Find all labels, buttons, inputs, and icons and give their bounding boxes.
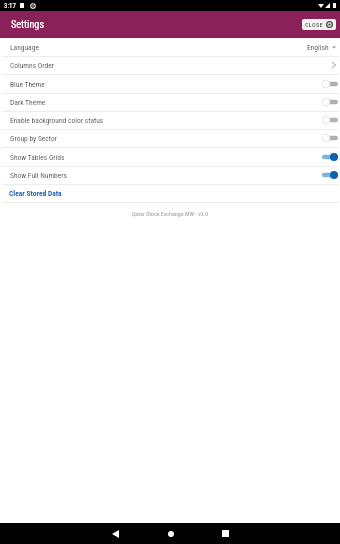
staticText: Clear Stored Data	[9, 189, 62, 198]
button[interactable]: Recents	[198, 523, 253, 544]
staticText: Group by Sector	[10, 134, 58, 143]
staticText: Settings	[11, 19, 45, 31]
staticText: Show Tables Grids	[10, 153, 65, 162]
button[interactable]: Group by Sector	[0, 129, 340, 147]
button[interactable]: Enable background color status	[0, 111, 340, 129]
staticText: Show Full Numbers	[10, 171, 68, 180]
button[interactable]: Clear Stored Data	[0, 184, 340, 202]
button[interactable]: Columns Order	[0, 56, 340, 74]
button[interactable]: Toggle off	[322, 132, 338, 144]
staticText: English	[307, 43, 329, 52]
button[interactable]: Back	[88, 523, 143, 544]
button[interactable]: Show Full Numbers	[0, 166, 340, 184]
button[interactable]: Toggle on	[322, 169, 338, 181]
staticText: Qatar Stock Exchange MW - v2.0	[0, 210, 340, 217]
button[interactable]: Dark Theme	[0, 93, 340, 111]
button[interactable]: Close settings	[302, 19, 336, 30]
button[interactable]: Toggle off	[322, 78, 338, 90]
button[interactable]: Toggle off	[322, 96, 338, 108]
staticText: Enable background color status	[10, 116, 104, 125]
button[interactable]: Toggle off	[322, 114, 338, 126]
staticText: Blue Theme	[10, 80, 45, 89]
button[interactable]: Toggle on	[322, 151, 338, 163]
button[interactable]: Show Tables Grids	[0, 148, 340, 166]
button[interactable]: Blue Theme	[0, 75, 340, 93]
button[interactable]: Home	[143, 523, 198, 544]
button[interactable]: Language	[0, 38, 340, 56]
staticText: Dark Theme	[10, 98, 46, 107]
staticText: Columns Order	[10, 61, 55, 70]
staticText: Language	[10, 43, 39, 52]
staticText: 3:17	[4, 2, 17, 10]
staticText: CLOSE	[305, 21, 324, 28]
